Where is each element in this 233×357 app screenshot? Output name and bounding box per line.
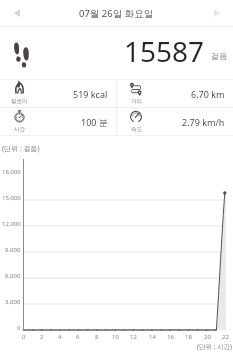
staticText: 0 <box>22 333 26 341</box>
staticText: 07월 26일 화요일 <box>79 7 154 20</box>
staticText: 12,000 <box>2 220 21 228</box>
staticText: 시간 <box>14 126 25 133</box>
staticText: 9,000 <box>5 246 21 254</box>
staticText: 14 <box>149 333 156 341</box>
staticText: 18 <box>185 333 192 341</box>
staticText: (단위 : 시간) <box>197 342 233 351</box>
staticText: 걸음 <box>211 51 227 61</box>
staticText: 8 <box>95 333 99 341</box>
staticText: 100 분 <box>81 116 108 128</box>
staticText: 2 <box>40 333 44 341</box>
staticText: 6,000 <box>5 272 21 280</box>
staticText: 519 kcal <box>73 88 108 100</box>
staticText: 0 <box>17 324 21 332</box>
staticText: 2.79 km/h <box>182 116 225 128</box>
staticText: 속도 <box>131 126 142 133</box>
button[interactable]: 거리 <box>117 80 233 107</box>
staticText: (단위 : 걸음) <box>2 144 40 154</box>
staticText: 16 <box>167 333 174 341</box>
button[interactable]: Previous day <box>0 0 33 26</box>
staticText: 15587 <box>124 32 205 70</box>
staticText: 20 <box>204 333 211 341</box>
staticText: 6.70 km <box>191 88 225 100</box>
button[interactable]: 시간 <box>0 108 116 135</box>
staticText: 3,000 <box>5 298 21 306</box>
button[interactable]: Next day <box>200 0 233 26</box>
staticText: 거리 <box>131 98 142 105</box>
staticText: 6 <box>76 333 80 341</box>
staticText: 10 <box>112 333 119 341</box>
staticText: 15,000 <box>2 194 21 202</box>
button[interactable]: 칼로리 <box>0 80 116 107</box>
staticText: 12 <box>130 333 137 341</box>
staticText: 칼로리 <box>11 98 28 105</box>
staticText: 4 <box>58 333 62 341</box>
button[interactable]: 속도 <box>117 108 233 135</box>
staticText: 22 <box>222 333 229 341</box>
staticText: 18,000 <box>2 168 21 176</box>
